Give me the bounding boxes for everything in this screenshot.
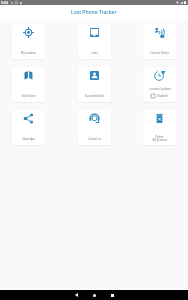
button[interactable]: Recents: [107, 290, 117, 300]
staticText: Lost Phone Tracker: [71, 9, 117, 16]
button[interactable]: Location Updates: [143, 67, 176, 102]
staticText: Links: [91, 51, 98, 55]
staticText: Disabled: [157, 94, 168, 98]
staticText: My Location: [21, 51, 36, 55]
button[interactable]: My Devices: [12, 67, 45, 102]
button[interactable]: Contact us: [78, 110, 111, 145]
staticText: Delete My Account: [152, 135, 167, 141]
button[interactable]: Home: [89, 290, 99, 300]
staticText: Contact us: [88, 137, 101, 141]
button[interactable]: My Location: [12, 24, 45, 59]
staticText: Share App: [22, 137, 35, 141]
staticText: Connect Device: [150, 51, 169, 55]
staticText: My Devices: [22, 94, 36, 98]
staticText: Account Details: [85, 94, 104, 98]
button[interactable]: Delete My Account: [143, 110, 176, 145]
button[interactable]: Share App: [12, 110, 45, 145]
staticText: 5:04: [1, 0, 9, 5]
button[interactable]: Links: [78, 24, 111, 59]
staticText: Location Updates: [149, 87, 171, 91]
button[interactable]: Back: [71, 290, 81, 300]
button[interactable]: Connect Device: [143, 24, 176, 59]
button[interactable]: Account Details: [78, 67, 111, 102]
